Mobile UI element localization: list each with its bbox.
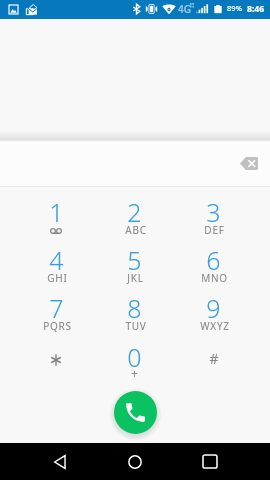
- staticText: 4: [49, 243, 64, 277]
- staticText: 3: [206, 195, 221, 229]
- staticText: 7: [49, 291, 64, 325]
- staticText: 5: [127, 243, 142, 277]
- staticText: DEF: [204, 223, 225, 237]
- button[interactable]: Recents: [190, 443, 230, 480]
- staticText: ABC: [125, 223, 147, 237]
- button[interactable]: 6: [174, 243, 253, 285]
- button[interactable]: 4: [17, 243, 95, 285]
- staticText: +: [131, 365, 138, 381]
- button[interactable]: 8: [95, 291, 174, 333]
- staticText: 8: [127, 291, 142, 325]
- staticText: TUV: [125, 319, 147, 333]
- staticText: MNO: [201, 271, 228, 285]
- button[interactable]: 9: [174, 291, 253, 333]
- staticText: PQRS: [43, 319, 72, 333]
- button[interactable]: 2: [95, 195, 174, 237]
- button[interactable]: 0: [95, 340, 174, 382]
- button[interactable]: Back: [40, 443, 80, 480]
- button[interactable]: 3: [174, 195, 253, 237]
- staticText: GHI: [47, 271, 68, 285]
- staticText: 0: [127, 340, 142, 374]
- button[interactable]: Home: [115, 443, 155, 480]
- button[interactable]: Backspace: [234, 148, 264, 178]
- button[interactable]: 5: [95, 243, 174, 285]
- staticText: 4G: [178, 2, 191, 16]
- staticText: 1: [49, 195, 64, 229]
- button[interactable]: [17, 340, 95, 382]
- staticText: 9: [206, 291, 221, 325]
- staticText: #: [209, 349, 219, 368]
- staticText: 2: [127, 195, 142, 229]
- button[interactable]: Call: [114, 391, 157, 434]
- staticText: 6: [206, 243, 221, 277]
- staticText: WXYZ: [200, 319, 230, 333]
- button[interactable]: 7: [17, 291, 95, 333]
- staticText: 89%: [227, 3, 242, 13]
- button[interactable]: #: [174, 340, 253, 382]
- staticText: JKL: [127, 271, 144, 285]
- button[interactable]: 1: [17, 195, 95, 237]
- staticText: 8:46: [247, 3, 265, 15]
